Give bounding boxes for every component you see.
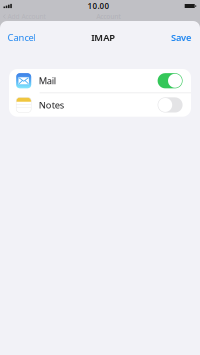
button[interactable]: Cancel [7,31,35,44]
button[interactable]: Mail [9,69,191,92]
button[interactable]: Notes [9,93,191,117]
staticText: Notes [39,99,64,111]
staticText: IMAP [91,31,115,44]
button[interactable]: Save [171,31,191,44]
staticText: 10.00 [87,1,109,11]
staticText: Mail [39,75,56,87]
staticText: Account [96,12,121,21]
staticText: Cancel [7,31,35,44]
staticText: Save [171,31,191,44]
